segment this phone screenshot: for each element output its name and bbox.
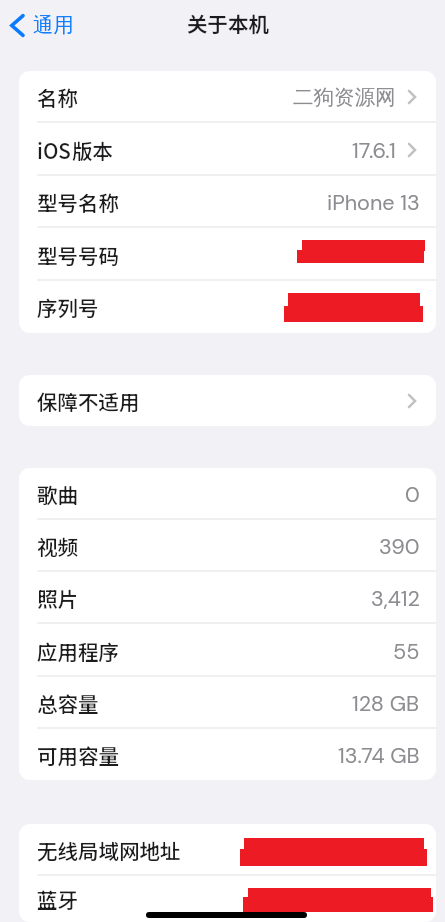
staticText: 关于本机 bbox=[187, 8, 269, 38]
staticText: 保障不适用 bbox=[37, 386, 140, 416]
button[interactable]: 名称 bbox=[19, 71, 436, 123]
staticText: 可用容量 bbox=[37, 740, 119, 770]
staticText: 序列号 bbox=[37, 292, 99, 322]
staticText: 0 bbox=[405, 481, 420, 509]
button[interactable]: 视频 bbox=[19, 520, 436, 572]
staticText: 55 bbox=[393, 638, 420, 666]
staticText: 3,412 bbox=[371, 585, 420, 613]
staticText: 128 GB bbox=[352, 690, 420, 718]
staticText: iOS 版本 bbox=[37, 135, 114, 165]
button[interactable]: 蓝牙 bbox=[19, 876, 436, 922]
button[interactable]: Back to 通用 bbox=[8, 6, 78, 44]
staticText: 13.74 GB bbox=[338, 742, 420, 770]
staticText: 型号名称 bbox=[37, 187, 119, 217]
staticText: 二狗资源网 bbox=[293, 84, 396, 110]
button[interactable]: 无线局域网地址 bbox=[19, 824, 436, 876]
button[interactable]: 型号号码 bbox=[19, 228, 436, 281]
button[interactable]: 序列号 bbox=[19, 281, 436, 333]
button[interactable]: 型号名称 bbox=[19, 176, 436, 228]
staticText: 17.6.1 bbox=[352, 137, 396, 165]
button[interactable]: 总容量 bbox=[19, 677, 436, 729]
staticText: 型号号码 bbox=[37, 240, 119, 270]
staticText: 通用 bbox=[33, 12, 74, 38]
button[interactable]: 歌曲 bbox=[19, 468, 436, 520]
staticText: 照片 bbox=[37, 583, 78, 613]
button[interactable]: 应用程序 bbox=[19, 624, 436, 677]
staticText: 390 bbox=[379, 533, 420, 561]
staticText: 蓝牙 bbox=[37, 884, 78, 914]
staticText: 名称 bbox=[37, 82, 78, 112]
staticText: iPhone 13 bbox=[327, 189, 420, 217]
staticText: 无线局域网地址 bbox=[37, 835, 181, 865]
button[interactable]: 照片 bbox=[19, 572, 436, 624]
staticText: 总容量 bbox=[37, 688, 99, 718]
staticText: 歌曲 bbox=[37, 479, 78, 509]
staticText: 视频 bbox=[37, 531, 78, 561]
button[interactable]: 可用容量 bbox=[19, 729, 436, 780]
button[interactable]: iOS 版本 bbox=[19, 123, 436, 176]
button[interactable]: 保障不适用 bbox=[19, 375, 436, 426]
staticText: 应用程序 bbox=[37, 636, 119, 666]
